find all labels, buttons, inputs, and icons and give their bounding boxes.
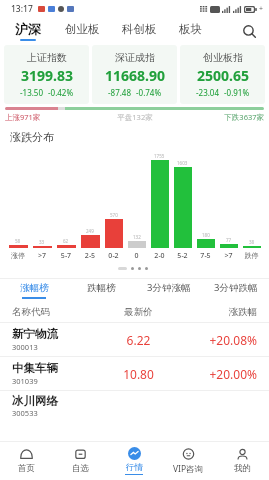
- staticText: 3分钟涨幅: [147, 281, 191, 294]
- staticText: 冰川网络: [12, 394, 58, 408]
- staticText: 科创板: [122, 22, 157, 36]
- staticText: 名称代码: [12, 306, 99, 318]
- staticText: 13:17: [11, 3, 33, 15]
- staticText: -23.04: [196, 87, 220, 98]
- staticText: 板块: [179, 22, 202, 36]
- button[interactable]: 中集车辆: [0, 357, 269, 390]
- button[interactable]: 我的: [215, 442, 269, 480]
- staticText: 11668.90: [105, 66, 165, 85]
- staticText: 62: [63, 238, 69, 244]
- staticText: 300533: [12, 408, 38, 418]
- staticText: 58: [15, 238, 21, 244]
- other: VIP咨询: [182, 448, 195, 461]
- button[interactable]: 跌幅榜: [68, 279, 135, 301]
- staticText: 5-2: [171, 251, 194, 261]
- staticText: 涨幅榜: [20, 282, 49, 294]
- button[interactable]: 深证成指: [92, 45, 177, 104]
- other: 行情: [128, 447, 141, 460]
- staticText: 249: [86, 228, 94, 234]
- staticText: 行情: [126, 462, 143, 473]
- other: 首页: [20, 448, 33, 461]
- other: 我的: [236, 448, 249, 461]
- staticText: 5-7: [54, 251, 78, 261]
- staticText: 2500.65: [197, 66, 249, 85]
- staticText: -13.50: [20, 87, 44, 98]
- button[interactable]: 自选: [53, 442, 107, 480]
- staticText: 300013: [12, 342, 38, 352]
- button[interactable]: 上证指数: [4, 45, 89, 104]
- staticText: 33: [39, 239, 45, 245]
- staticText: +: [259, 4, 264, 14]
- staticText: 0: [125, 251, 148, 261]
- staticText: 创业板指: [203, 51, 243, 64]
- staticText: -87.48: [108, 87, 132, 98]
- staticText: 最新价: [99, 306, 178, 318]
- button[interactable]: 行情: [107, 442, 161, 480]
- staticText: -0.42%: [48, 87, 74, 98]
- staticText: 77: [226, 237, 232, 243]
- staticText: 301039: [12, 376, 38, 386]
- staticText: >7: [30, 251, 54, 261]
- button[interactable]: 科创板: [121, 22, 158, 40]
- staticText: 涨跌分布: [10, 130, 54, 144]
- staticText: 2-0: [148, 251, 171, 261]
- button[interactable]: 创业板指: [180, 45, 265, 104]
- staticText: 自选: [72, 463, 89, 474]
- button[interactable]: 3分钟涨幅: [135, 279, 202, 301]
- staticText: +20.08%: [178, 332, 257, 348]
- staticText: 0-2: [102, 251, 125, 261]
- staticText: -0.91%: [224, 87, 250, 98]
- button[interactable]: 创业板: [64, 22, 101, 40]
- staticText: 首页: [18, 463, 35, 474]
- staticText: 6.22: [99, 332, 178, 348]
- staticText: 132: [133, 234, 141, 240]
- staticText: 38: [249, 239, 255, 245]
- staticText: 180: [202, 232, 210, 238]
- staticText: VIP咨询: [173, 463, 204, 475]
- staticText: 570: [110, 212, 118, 218]
- button[interactable]: 3分钟跌幅: [202, 279, 269, 301]
- staticText: -0.74%: [136, 87, 162, 98]
- staticText: 沪深: [15, 21, 41, 37]
- button[interactable]: 板块: [178, 22, 203, 40]
- staticText: 上证指数: [27, 51, 67, 64]
- staticText: 新宁物流: [12, 327, 58, 341]
- staticText: 中集车辆: [12, 361, 58, 375]
- staticText: >7: [217, 251, 240, 261]
- staticText: 涨停: [6, 251, 30, 260]
- button[interactable]: 新宁物流: [0, 323, 269, 356]
- staticText: 平盘132家: [92, 112, 178, 122]
- staticText: 2-5: [78, 251, 102, 261]
- staticText: 7-5: [194, 251, 217, 261]
- button[interactable]: VIP咨询: [161, 442, 215, 480]
- button[interactable]: 涨幅榜: [0, 279, 68, 301]
- staticText: 我的: [234, 463, 251, 474]
- button[interactable]: Search: [237, 19, 261, 43]
- button[interactable]: 沪深: [14, 21, 42, 41]
- staticText: 涨跌幅: [178, 306, 257, 318]
- other: 自选: [74, 448, 87, 461]
- button[interactable]: 首页: [0, 442, 53, 480]
- staticText: 3199.83: [21, 66, 73, 85]
- staticText: 10.80: [99, 366, 178, 382]
- staticText: 跌幅榜: [87, 282, 116, 294]
- staticText: 1603: [177, 160, 188, 166]
- staticText: 跌停: [240, 251, 263, 260]
- staticText: 深证成指: [115, 51, 155, 64]
- staticText: 1755: [154, 153, 165, 159]
- staticText: 下跌3637家: [178, 112, 264, 122]
- staticText: 上涨971家: [5, 112, 92, 122]
- staticText: 3分钟跌幅: [214, 281, 258, 294]
- staticText: +20.00%: [178, 366, 257, 382]
- staticText: 创业板: [65, 22, 100, 36]
